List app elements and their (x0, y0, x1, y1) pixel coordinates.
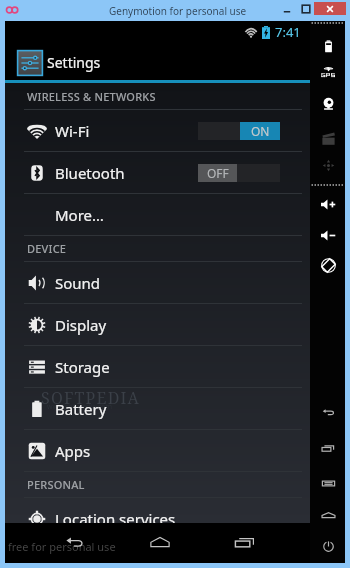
button[interactable]: Bluetooth (5, 152, 310, 194)
staticText: Location services (55, 509, 176, 523)
button[interactable]: Move (317, 154, 339, 176)
button[interactable]: Camera (317, 93, 339, 115)
staticText: Genymotion for personal use (109, 4, 247, 18)
staticText: Settings (47, 53, 101, 72)
staticText: WIRELESS & NETWORKS (27, 89, 156, 104)
button[interactable]: Back (55, 523, 95, 563)
staticText: free for personal use (8, 539, 116, 554)
staticText: Bluetooth (55, 163, 125, 183)
staticText: Apps (55, 441, 91, 461)
button[interactable]: Volume up (317, 193, 339, 215)
staticText: Storage (55, 357, 110, 377)
button[interactable]: SOFTPEDIA (5, 388, 310, 430)
button[interactable]: Rotate (317, 254, 339, 276)
button[interactable]: Storage (5, 346, 310, 388)
button[interactable]: Battery (317, 35, 339, 57)
staticText: DEVICE (27, 241, 67, 256)
staticText: ON (251, 123, 270, 139)
button[interactable]: Recent apps (317, 437, 339, 459)
button[interactable]: ON (198, 122, 280, 140)
button[interactable]: Minimize (277, 0, 297, 17)
button[interactable]: Recent apps (225, 523, 265, 563)
staticText: Sound (55, 273, 101, 293)
staticText: Battery (55, 399, 107, 419)
button[interactable]: Back (317, 401, 339, 423)
button[interactable]: Display (5, 304, 310, 346)
staticText: www.softpedia.com (47, 402, 112, 412)
staticText: OFF (207, 165, 229, 181)
button[interactable]: Power (317, 535, 339, 557)
button[interactable]: Home (140, 523, 180, 563)
button[interactable]: Volume down (317, 224, 339, 246)
button[interactable]: Menu (317, 472, 339, 494)
button[interactable]: Sound (5, 262, 310, 304)
button[interactable]: Apps (5, 430, 310, 472)
button[interactable]: Wi-Fi (5, 110, 310, 152)
staticText: 7:41 (275, 23, 301, 41)
button[interactable]: GPS (317, 61, 339, 83)
button[interactable]: Maximize (296, 0, 315, 17)
staticText: More… (55, 205, 104, 225)
button[interactable]: Home (317, 504, 339, 526)
staticText: SOFTPEDIA (41, 387, 141, 409)
staticText: PERSONAL (27, 477, 85, 492)
staticText: Wi-Fi (55, 121, 90, 141)
button[interactable]: More… (5, 194, 310, 236)
button[interactable]: Location services (5, 498, 310, 523)
button[interactable]: Close (314, 2, 346, 15)
button[interactable]: OFF (198, 164, 280, 182)
button[interactable]: Screen record (317, 127, 339, 149)
staticText: Display (55, 315, 107, 335)
